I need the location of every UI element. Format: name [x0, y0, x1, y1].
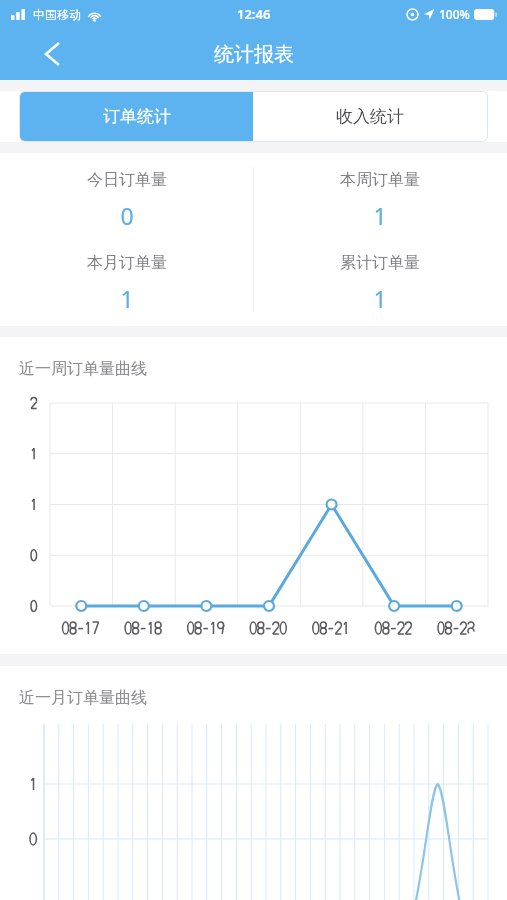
button[interactable]: Back [30, 32, 74, 76]
staticText: 订单统计 [103, 106, 171, 127]
staticText: 本周订单量 [340, 170, 420, 190]
staticText: 100% [439, 6, 470, 22]
staticText: 1 [120, 283, 134, 314]
staticText: 中国移动 [33, 7, 81, 22]
staticText: 0 [120, 200, 134, 231]
staticText: 近一月订单量曲线 [19, 688, 147, 708]
button[interactable]: 订单统计 [20, 92, 253, 141]
staticText: 1 [373, 200, 387, 231]
staticText: 统计报表 [214, 42, 294, 67]
staticText: 12:46 [237, 5, 271, 23]
staticText: 1 [373, 283, 387, 314]
staticText: 今日订单量 [87, 170, 167, 190]
button[interactable]: 收入统计 [253, 92, 487, 141]
staticText: 累计订单量 [340, 253, 420, 273]
staticText: 近一周订单量曲线 [19, 359, 147, 379]
staticText: 收入统计 [336, 106, 404, 127]
staticText: 本月订单量 [87, 253, 167, 273]
